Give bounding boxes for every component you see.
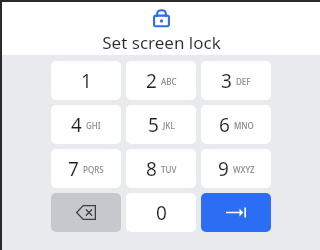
button[interactable]: 4	[51, 105, 121, 144]
staticText: 4	[71, 112, 82, 138]
staticText: TUV	[161, 164, 177, 175]
button[interactable]: 0	[126, 193, 196, 232]
staticText: 7	[68, 156, 79, 182]
staticText: JKL	[163, 120, 175, 131]
button[interactable]: 7	[51, 149, 121, 188]
button[interactable]: 3	[201, 61, 271, 100]
staticText: 9	[218, 156, 229, 182]
staticText: 6	[219, 112, 230, 138]
staticText: GHI	[86, 120, 101, 131]
staticText: WXYZ	[233, 164, 255, 175]
button[interactable]: 2	[126, 61, 196, 100]
staticText: ABC	[161, 76, 177, 87]
button[interactable]: 1	[51, 61, 121, 100]
button[interactable]: 8	[126, 149, 196, 188]
staticText: 2	[146, 68, 157, 94]
staticText: DEF	[236, 76, 251, 87]
staticText: MNO	[234, 120, 254, 131]
button[interactable]: 6	[201, 105, 271, 144]
staticText: 8	[146, 156, 157, 182]
staticText: PQRS	[83, 164, 104, 175]
button[interactable]: 5	[126, 105, 196, 144]
button[interactable]: 9	[201, 149, 271, 188]
staticText: 0	[156, 200, 167, 226]
staticText: 5	[148, 112, 159, 138]
button[interactable]: Backspace	[51, 193, 121, 232]
staticText: Set screen lock	[102, 31, 221, 54]
staticText: 3	[221, 68, 232, 94]
staticText: 1	[81, 68, 92, 94]
button[interactable]: Next	[201, 193, 271, 232]
